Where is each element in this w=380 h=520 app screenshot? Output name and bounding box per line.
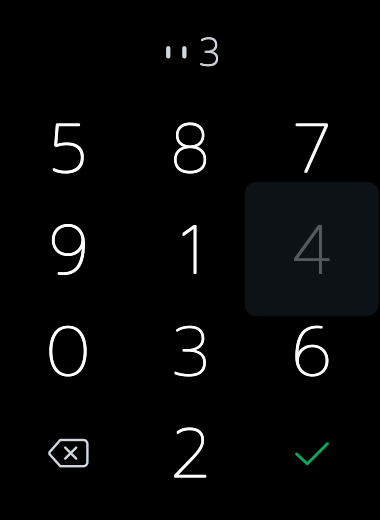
staticText: 9 — [49, 197, 89, 302]
button[interactable]: Delete — [7, 402, 129, 504]
staticText: 9 — [48, 198, 88, 303]
staticText: 5 — [50, 97, 88, 202]
button[interactable]: 3 — [129, 300, 251, 401]
staticText: 6 — [292, 300, 332, 405]
staticText: 3 — [198, 24, 220, 82]
staticText: 3 — [170, 300, 209, 405]
staticText: 6 — [292, 299, 332, 404]
staticText: 8 — [171, 97, 211, 202]
staticText: 7 — [292, 97, 330, 202]
staticText: 9 — [49, 198, 89, 303]
button[interactable]: 5 — [7, 97, 129, 198]
button[interactable]: 9 — [7, 198, 129, 300]
staticText: 5 — [49, 97, 87, 202]
staticText: 4 — [292, 198, 332, 303]
staticText: 7 — [293, 97, 331, 202]
button[interactable]: 8 — [129, 97, 251, 198]
staticText: 0 — [45, 299, 90, 404]
staticText: 1 — [178, 197, 201, 302]
staticText: 5 — [50, 96, 88, 201]
button[interactable]: Confirm — [251, 403, 373, 504]
staticText: 3 — [171, 299, 210, 404]
staticText: 1 — [178, 198, 201, 303]
staticText: 4 — [292, 197, 332, 302]
staticText: 0 — [46, 300, 91, 405]
staticText: 6 — [291, 299, 331, 404]
staticText: 5 — [49, 96, 87, 201]
staticText: 3 — [170, 299, 209, 404]
staticText: 8 — [170, 97, 210, 202]
staticText: 4 — [291, 198, 331, 303]
staticText: 2 — [170, 402, 210, 507]
staticText: 3 — [199, 23, 221, 81]
staticText: 9 — [48, 197, 88, 302]
staticText: 3 — [199, 24, 221, 82]
staticText: 2 — [171, 401, 211, 506]
staticText: 3 — [198, 23, 220, 81]
staticText: 2 — [171, 402, 211, 507]
button[interactable]: 1 — [129, 198, 251, 300]
staticText: 8 — [170, 96, 210, 201]
staticText: 8 — [171, 96, 211, 201]
staticText: 3 — [171, 300, 210, 405]
staticText: 1 — [179, 197, 202, 302]
staticText: 4 — [291, 197, 331, 302]
staticText: 0 — [45, 300, 90, 405]
staticText: 7 — [292, 96, 330, 201]
button[interactable]: 7 — [251, 97, 373, 198]
staticText: 2 — [170, 401, 210, 506]
staticText: 6 — [291, 300, 331, 405]
button[interactable]: 4 — [251, 198, 373, 300]
button[interactable]: 2 — [129, 402, 251, 503]
staticText: 0 — [46, 299, 91, 404]
staticText: 1 — [179, 198, 202, 303]
button[interactable]: 6 — [251, 300, 373, 401]
staticText: 7 — [293, 96, 331, 201]
button[interactable]: 0 — [7, 300, 129, 401]
